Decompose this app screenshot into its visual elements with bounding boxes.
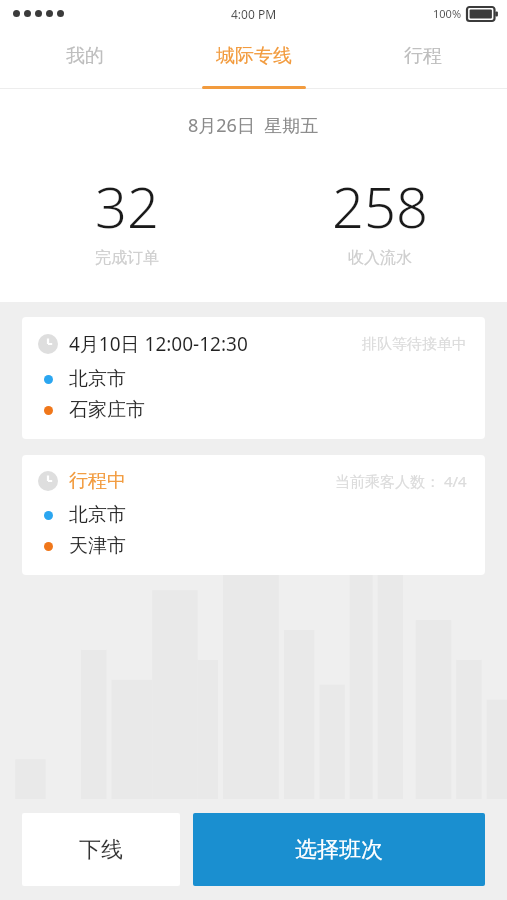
staticText: 完成订单 <box>95 248 159 268</box>
staticText: 天津市 <box>69 534 126 558</box>
staticText: 我的 <box>66 44 104 68</box>
staticText: 4月10日 12:00-12:30 <box>69 331 248 357</box>
button[interactable]: 行程 <box>338 27 507 88</box>
button[interactable]: Schedule <box>22 317 485 439</box>
staticText: 行程 <box>404 44 442 68</box>
staticText: 北京市 <box>69 367 126 391</box>
staticText: 下线 <box>79 836 123 864</box>
staticText: 258 <box>332 168 428 244</box>
staticText: 石家庄市 <box>69 398 145 422</box>
staticText: 选择班次 <box>295 836 383 864</box>
staticText: 当前乘客人数： 4/4 <box>335 471 467 491</box>
staticText: 8月26日 星期五 <box>188 113 319 138</box>
staticText: 32 <box>95 168 159 244</box>
other: Schedule <box>38 471 58 491</box>
staticText: 北京市 <box>69 503 126 527</box>
button[interactable]: 城际专线 <box>169 27 338 88</box>
button[interactable]: 我的 <box>0 27 169 88</box>
other: Schedule <box>38 334 58 354</box>
button[interactable]: 选择班次 <box>193 813 485 886</box>
staticText: 100% <box>433 6 462 21</box>
button[interactable]: 下线 <box>22 813 180 886</box>
staticText: 城际专线 <box>216 44 292 68</box>
staticText: 行程中 <box>69 469 126 493</box>
staticText: 4:00 PM <box>231 6 277 22</box>
staticText: 排队等待接单中 <box>362 335 467 354</box>
staticText: 收入流水 <box>348 248 412 268</box>
button[interactable]: Schedule <box>22 455 485 575</box>
